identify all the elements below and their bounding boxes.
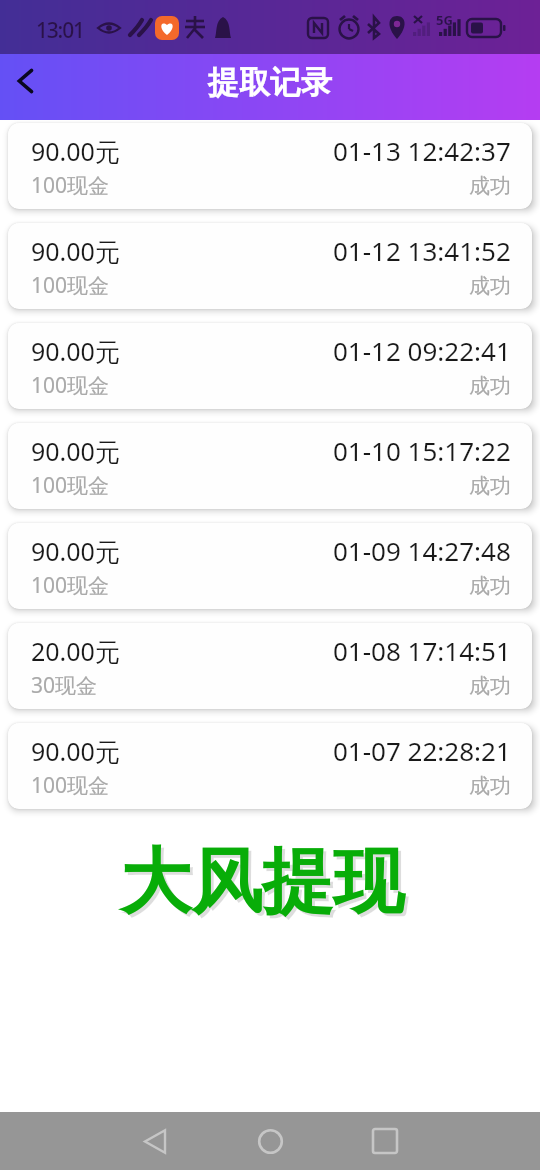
button[interactable]: Back [126, 1112, 184, 1170]
staticText: 90.00元 [31, 234, 120, 268]
staticText: 成功 [469, 373, 511, 399]
staticText: 01-12 09:22:41 [333, 333, 511, 368]
staticText: 5G [436, 11, 453, 29]
staticText: 90.00元 [31, 334, 120, 368]
staticText: 13:01 [36, 16, 84, 45]
staticText: 成功 [469, 573, 511, 599]
staticText: 20.00元 [31, 634, 120, 668]
staticText: 30现金 [31, 671, 98, 700]
staticText: 90.00元 [31, 534, 120, 568]
staticText: 提取记录 [208, 63, 332, 102]
staticText: 大风提现 [123, 841, 407, 930]
button[interactable]: Back [0, 53, 54, 109]
staticText: 100现金 [31, 571, 110, 600]
staticText: 100现金 [31, 471, 110, 500]
button[interactable]: 90.00元 [8, 223, 532, 309]
staticText: 100现金 [31, 771, 110, 800]
button[interactable]: Recents [356, 1112, 414, 1170]
staticText: 大风提现 [120, 838, 404, 927]
button[interactable]: 20.00元 [8, 623, 532, 709]
staticText: 01-07 22:28:21 [333, 733, 511, 768]
staticText: 90.00元 [31, 134, 120, 168]
staticText: 100现金 [31, 271, 110, 300]
button[interactable]: 90.00元 [8, 123, 532, 209]
button[interactable]: 90.00元 [8, 723, 532, 809]
button[interactable]: 90.00元 [8, 423, 532, 509]
staticText: 100现金 [31, 371, 110, 400]
staticText: 01-09 14:27:48 [333, 533, 511, 568]
staticText: 01-10 15:17:22 [333, 433, 511, 468]
staticText: 01-12 13:41:52 [333, 233, 511, 268]
staticText: 成功 [469, 673, 511, 699]
button[interactable]: 90.00元 [8, 523, 532, 609]
staticText: 成功 [469, 273, 511, 299]
staticText: 成功 [469, 773, 511, 799]
staticText: 成功 [469, 173, 511, 199]
staticText: 01-13 12:42:37 [333, 133, 511, 168]
staticText: 成功 [469, 473, 511, 499]
button[interactable]: 90.00元 [8, 323, 532, 409]
staticText: 90.00元 [31, 434, 120, 468]
staticText: 90.00元 [31, 734, 120, 768]
button[interactable]: Home [241, 1112, 299, 1170]
staticText: 100现金 [31, 171, 110, 200]
staticText: 01-08 17:14:51 [333, 633, 511, 668]
